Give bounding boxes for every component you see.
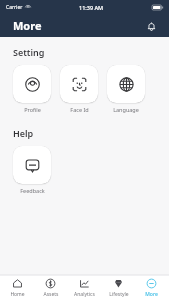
staticText: Profile	[24, 106, 41, 113]
button[interactable]: Analytics	[68, 276, 101, 300]
staticText: 11:39 AM	[79, 4, 104, 11]
staticText: Face Id	[70, 106, 89, 113]
staticText: More	[145, 291, 158, 298]
button[interactable]: Feedback	[13, 146, 51, 194]
button[interactable]: More	[135, 276, 168, 300]
button[interactable]: Profile	[13, 65, 51, 113]
staticText: Home	[10, 291, 25, 298]
staticText: More	[13, 18, 42, 33]
staticText: Feedback	[20, 187, 45, 194]
staticText: Assets	[43, 291, 59, 298]
staticText: Lifestyle	[109, 291, 129, 298]
staticText: Help	[13, 127, 34, 139]
staticText: Carrier	[6, 4, 23, 11]
staticText: Analytics	[74, 291, 95, 298]
staticText: Setting	[13, 46, 45, 58]
button[interactable]: Home	[1, 276, 34, 300]
button[interactable]: Language	[107, 65, 145, 113]
button[interactable]: Assets	[34, 276, 67, 300]
button[interactable]: Face Id	[60, 65, 98, 113]
button[interactable]: Notifications	[142, 17, 160, 35]
button[interactable]: Lifestyle	[102, 276, 135, 300]
staticText: Language	[113, 106, 139, 113]
